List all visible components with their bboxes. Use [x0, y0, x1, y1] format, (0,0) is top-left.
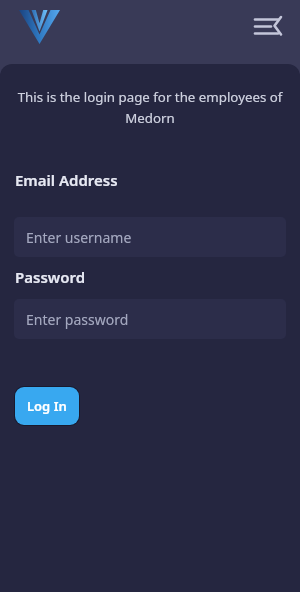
staticText: This is the login page for the employees… [0, 88, 300, 127]
staticText: Email Address [15, 170, 118, 190]
button[interactable]: Enter password [14, 299, 286, 339]
button[interactable] [248, 6, 288, 46]
button[interactable]: Enter username [14, 217, 286, 257]
staticText: Enter password [26, 310, 129, 329]
staticText: Log In [27, 397, 67, 415]
staticText: Enter username [26, 228, 132, 247]
staticText: Password [15, 267, 86, 287]
button[interactable]: Log In [15, 387, 79, 425]
